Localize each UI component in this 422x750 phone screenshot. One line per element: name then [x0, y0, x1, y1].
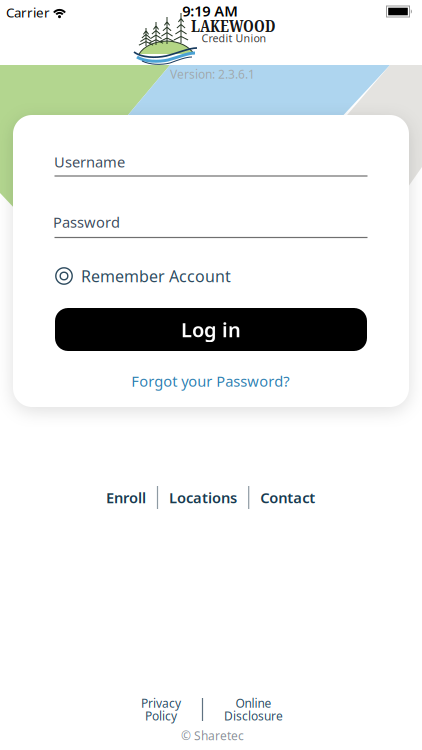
staticText: Forgot your Password?	[131, 371, 289, 391]
staticText: Username	[54, 152, 125, 171]
staticText: 9:19 AM	[182, 1, 238, 21]
button[interactable]: Forgot your Password?	[131, 371, 289, 391]
button[interactable]: Online	[224, 695, 283, 724]
staticText: Disclosure	[224, 708, 283, 724]
button[interactable]: Username	[54, 148, 367, 182]
button[interactable]: Contact	[260, 488, 315, 507]
staticText: Credit Union	[201, 31, 266, 45]
staticText: Policy	[145, 708, 177, 724]
staticText: Online	[236, 695, 272, 711]
staticText: Contact	[260, 488, 315, 507]
button[interactable]: Log in	[55, 308, 367, 351]
staticText: © Sharetec	[181, 727, 244, 743]
staticText: Privacy	[141, 695, 181, 711]
button[interactable]: Enroll	[106, 488, 146, 507]
staticText: Password	[53, 212, 120, 232]
button[interactable]: Password	[54, 208, 367, 242]
staticText: Locations	[169, 488, 237, 507]
button[interactable]: Privacy	[141, 695, 181, 724]
staticText: Remember Account	[81, 265, 231, 287]
button[interactable]: Remember Account	[55, 265, 231, 287]
staticText: Log in	[181, 316, 241, 343]
staticText: Version: 2.3.6.1	[170, 66, 255, 82]
staticText: Carrier	[6, 3, 50, 21]
staticText: Enroll	[106, 488, 146, 507]
staticText: LAKEWOOD	[191, 14, 276, 37]
button[interactable]: Locations	[169, 488, 237, 507]
